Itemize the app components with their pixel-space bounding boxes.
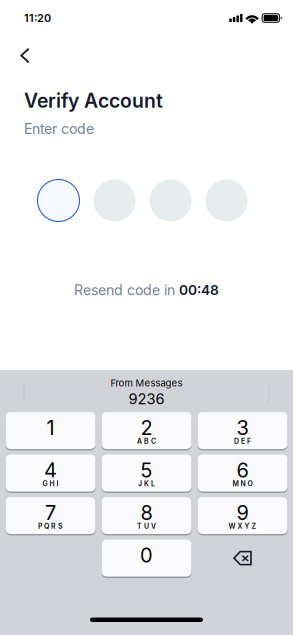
staticText: 11:20	[24, 11, 51, 25]
staticText: 6	[236, 458, 248, 482]
staticText: P Q R S	[38, 522, 63, 530]
staticText: Enter code	[24, 120, 94, 137]
staticText: 5	[140, 458, 152, 482]
button[interactable]: 7	[5, 497, 95, 534]
staticText: Resend code in	[74, 281, 179, 299]
button[interactable]: 2	[101, 412, 191, 449]
button[interactable]: Back	[9, 40, 41, 70]
staticText: 1	[46, 416, 54, 440]
staticText: M N O	[232, 480, 252, 488]
staticText: W X Y Z	[228, 522, 256, 530]
button[interactable]: 4	[5, 454, 95, 492]
button[interactable]: Delete	[197, 539, 287, 577]
staticText: 4	[44, 458, 57, 482]
staticText: Verify Account	[24, 89, 163, 112]
button[interactable]: 1	[5, 412, 95, 449]
staticText: 9236	[128, 390, 164, 408]
button[interactable]: 9	[197, 497, 287, 534]
staticText: 7	[45, 501, 56, 525]
staticText: J K L	[138, 480, 155, 488]
staticText: G H I	[42, 480, 58, 488]
staticText: 0	[140, 543, 153, 567]
staticText: 00:48	[179, 282, 219, 298]
button[interactable]: 0	[101, 539, 191, 577]
staticText: 2	[140, 416, 152, 440]
staticText: 9	[236, 501, 248, 525]
button[interactable]: 3	[197, 412, 287, 449]
button[interactable]: 5	[101, 454, 191, 492]
button[interactable]: 8	[101, 497, 191, 534]
staticText: D E F	[234, 437, 251, 445]
staticText: 8	[140, 501, 152, 525]
staticText: 3	[236, 416, 248, 440]
staticText: From Messages	[110, 377, 182, 389]
staticText: A B C	[137, 437, 156, 445]
staticText: T U V	[137, 522, 156, 530]
button[interactable]: 6	[197, 454, 287, 492]
